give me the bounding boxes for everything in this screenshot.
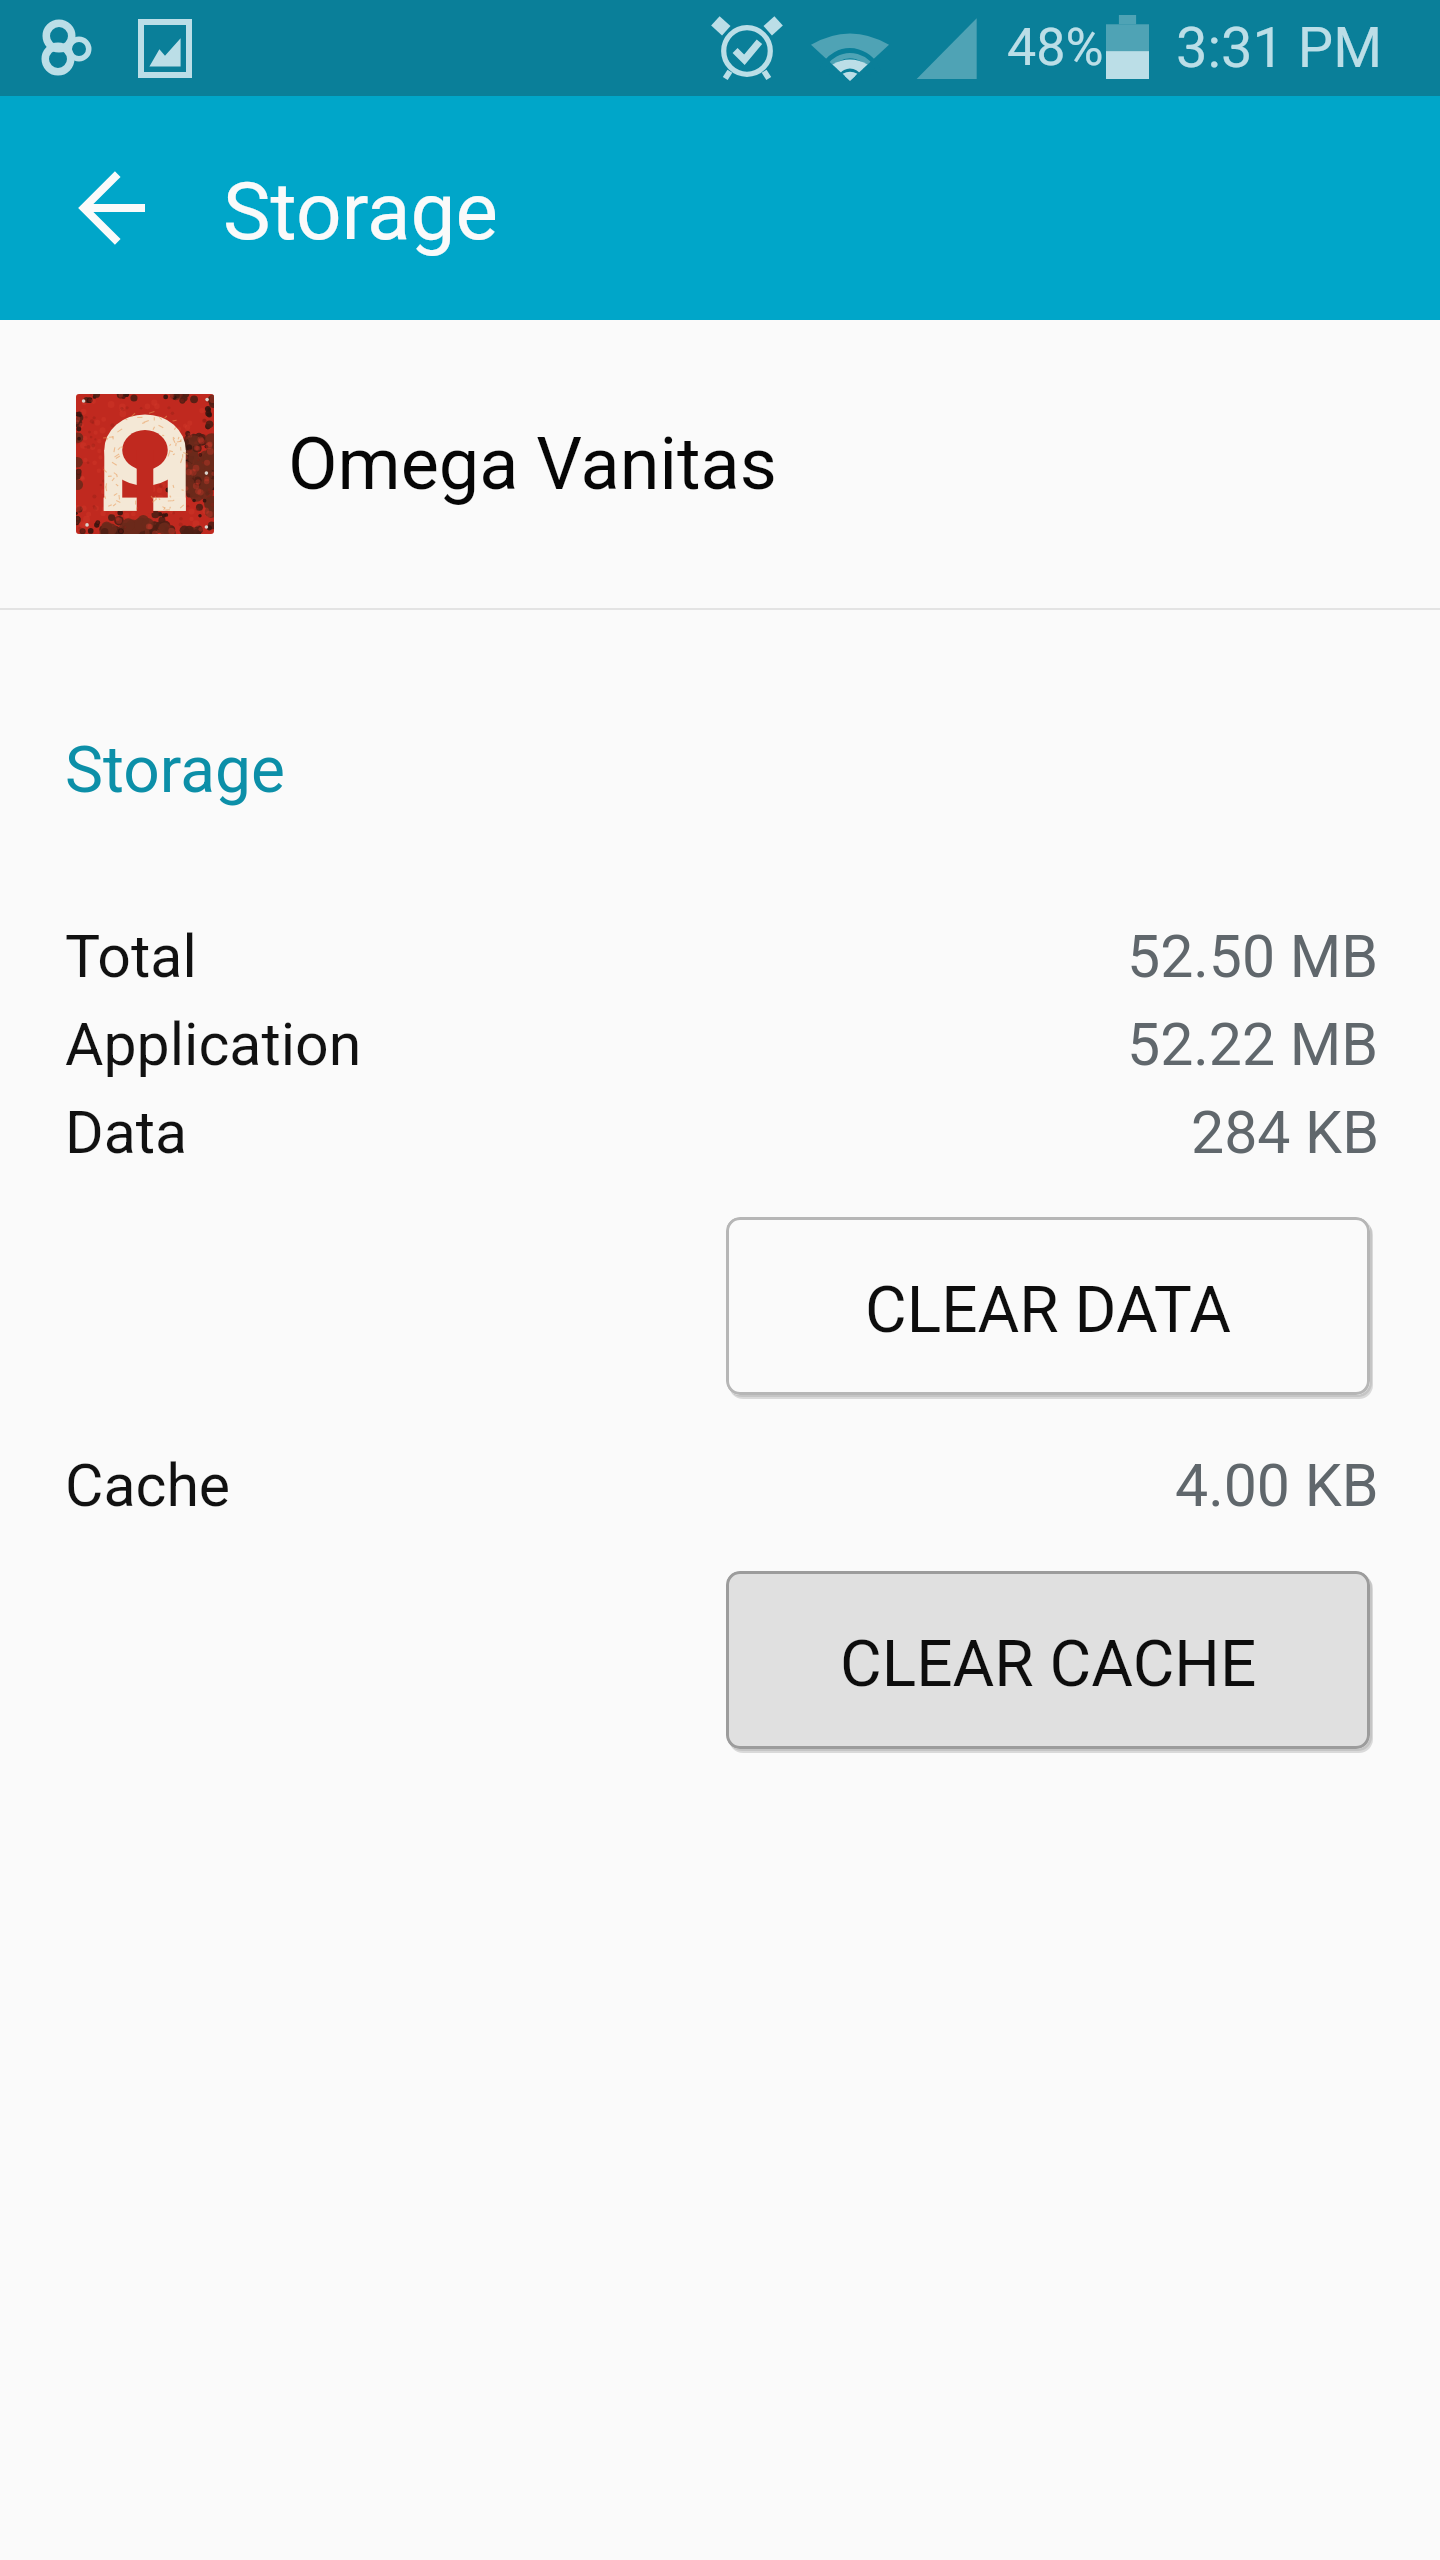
button[interactable]: Navigate up xyxy=(48,143,178,273)
staticText: 52.22 MB xyxy=(1127,1010,1379,1079)
button[interactable]: CLEAR CACHE xyxy=(726,1571,1370,1749)
staticText: Storage xyxy=(223,165,498,259)
staticText: Omega Vanitas xyxy=(288,422,777,506)
staticText: 3:31 PM xyxy=(1176,15,1383,81)
button[interactable]: CLEAR DATA xyxy=(726,1217,1370,1395)
staticText: 48% xyxy=(1007,17,1104,78)
staticText: CLEAR CACHE xyxy=(840,1627,1257,1702)
staticText: CLEAR DATA xyxy=(865,1273,1232,1348)
staticText: Storage xyxy=(65,733,285,808)
staticText: Data xyxy=(65,1098,188,1167)
staticText: Application xyxy=(65,1010,362,1079)
staticText: 284 KB xyxy=(1191,1098,1379,1167)
staticText: Cache xyxy=(65,1451,231,1520)
staticText: 4.00 KB xyxy=(1175,1451,1379,1520)
button[interactable]: Omega Vanitas xyxy=(0,320,1440,608)
staticText: 52.50 MB xyxy=(1127,922,1379,991)
staticText: Total xyxy=(65,922,197,991)
